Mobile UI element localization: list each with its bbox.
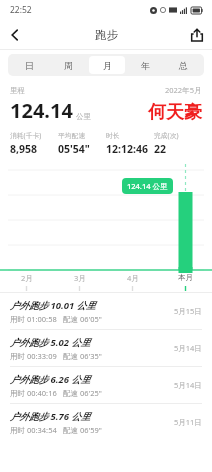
staticText: 消耗(千卡)	[10, 131, 42, 140]
staticText: 用时 00:40:16	[10, 388, 57, 398]
staticText: 配速 06'25"	[63, 388, 102, 398]
staticText: 4月	[127, 273, 139, 283]
staticText: 里程	[10, 86, 25, 95]
staticText: 户外跑步 6.26 公里	[10, 373, 91, 386]
staticText: 8,958	[10, 142, 38, 156]
staticText: 跑步	[95, 28, 118, 42]
staticText: 日	[25, 60, 34, 71]
staticText: 5月14日	[174, 380, 202, 390]
staticText: 配速 06'05"	[63, 314, 102, 324]
staticText: 周	[64, 60, 73, 71]
staticText: 公里	[76, 112, 91, 121]
staticText: 5月15日	[174, 306, 202, 316]
button[interactable]: 户外跑步 5.76 公里	[0, 404, 212, 440]
button[interactable]: 户外跑步 10.01 公里	[0, 293, 212, 329]
staticText: 年	[141, 60, 150, 71]
button[interactable]: 周	[50, 56, 87, 74]
button[interactable]: 日	[11, 56, 48, 74]
staticText: 户外跑步 10.01 公里	[10, 299, 96, 312]
staticText: 用时 01:00:58	[10, 314, 57, 324]
button[interactable]: Share	[182, 20, 212, 50]
staticText: 本月	[178, 273, 193, 282]
staticText: 5月14日	[174, 343, 202, 353]
staticText: 时长	[106, 131, 120, 140]
button[interactable]: 户外跑步 6.26 公里	[0, 367, 212, 403]
staticText: 用时 00:34:54	[10, 425, 57, 435]
button[interactable]: 年	[127, 56, 163, 74]
staticText: 户外跑步 5.76 公里	[10, 410, 91, 423]
staticText: 22	[154, 142, 167, 156]
button[interactable]: Back	[0, 20, 30, 50]
staticText: 124.14	[10, 97, 73, 124]
staticText: 何天豪	[148, 101, 202, 124]
staticText: 2月	[21, 273, 33, 283]
button[interactable]: 户外跑步 5.02 公里	[0, 330, 212, 366]
staticText: 户外跑步 5.02 公里	[10, 336, 91, 349]
staticText: 总	[179, 60, 188, 71]
button[interactable]: 月	[89, 56, 125, 74]
staticText: 12:12:46	[106, 142, 148, 156]
staticText: 配速 06'59"	[63, 425, 102, 435]
staticText: 5月11日	[174, 417, 202, 427]
staticText: 月	[103, 60, 112, 71]
staticText: 2022年5月	[165, 85, 202, 95]
staticText: 124.14 公里	[127, 181, 168, 191]
staticText: 22:52	[10, 4, 32, 16]
staticText: 配速 06'35"	[63, 351, 102, 361]
staticText: 用时 00:33:09	[10, 351, 57, 361]
staticText: 平均配速	[58, 131, 86, 140]
staticText: 05'54"	[58, 142, 90, 156]
staticText: 3月	[74, 273, 86, 283]
staticText: 完成(次)	[154, 131, 179, 140]
button[interactable]: 总	[165, 56, 201, 74]
